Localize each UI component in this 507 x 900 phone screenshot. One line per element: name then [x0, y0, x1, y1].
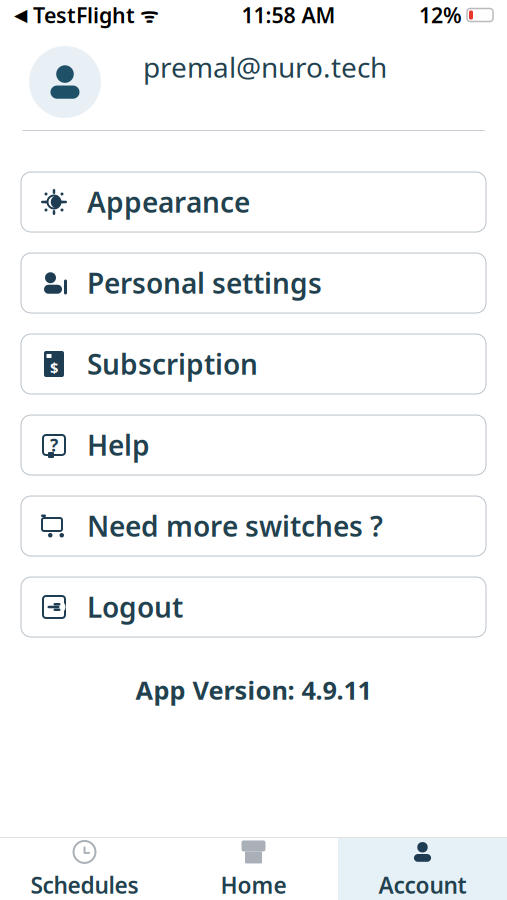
button[interactable]: Logout	[21, 577, 486, 637]
button[interactable]: Appearance	[21, 172, 486, 232]
button[interactable]: Home	[169, 838, 338, 900]
staticText: 12%	[419, 1, 462, 29]
staticText: Account	[378, 870, 466, 900]
button[interactable]: Schedules	[0, 838, 169, 900]
staticText: Need more switches ?	[87, 507, 383, 545]
staticText: premal@nuro.tech	[143, 48, 387, 86]
staticText: Logout	[87, 588, 183, 626]
staticText: $	[50, 358, 58, 377]
button[interactable]: Personal settings	[21, 253, 486, 313]
staticText: Personal settings	[87, 264, 322, 302]
staticText: Home	[220, 870, 286, 900]
staticText: ?	[50, 433, 58, 456]
staticText: TestFlight	[27, 1, 135, 29]
staticText: Schedules	[30, 870, 138, 900]
button[interactable]: ?	[21, 415, 486, 475]
staticText: Help	[87, 426, 150, 464]
staticText: ◀	[14, 5, 27, 25]
staticText: ᯤ	[135, 2, 158, 28]
staticText: 11:58 AM	[241, 1, 335, 29]
staticText: App Version: 4.9.11	[135, 673, 371, 707]
button[interactable]: $	[21, 334, 486, 394]
staticText: Subscription	[87, 345, 258, 383]
button[interactable]: Need more switches ?	[21, 496, 486, 556]
button[interactable]: Account	[338, 838, 507, 900]
staticText: Appearance	[87, 183, 250, 221]
